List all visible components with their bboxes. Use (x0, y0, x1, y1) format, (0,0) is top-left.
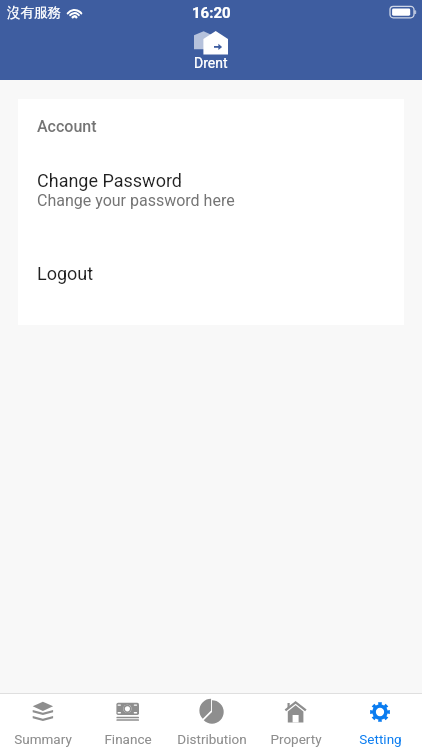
staticText: Property (270, 731, 322, 747)
staticText: Drent (194, 55, 228, 71)
button[interactable]: Distribution (170, 694, 254, 747)
button[interactable]: Property (254, 694, 338, 747)
button[interactable]: Setting (338, 694, 422, 747)
staticText: Change your password here (37, 191, 235, 210)
staticText: Account (37, 117, 97, 136)
staticText: Change Password (37, 170, 182, 191)
staticText: Distribution (177, 731, 247, 747)
staticText: Finance (104, 731, 152, 747)
staticText: 16:20 (192, 4, 231, 22)
button[interactable]: Logout (18, 261, 404, 286)
staticText: Logout (37, 263, 94, 284)
button[interactable]: Summary (0, 694, 85, 747)
button[interactable]: Change Password (18, 168, 404, 212)
staticText: Setting (359, 731, 402, 747)
staticText: 沒有服務 (7, 4, 61, 21)
button[interactable]: Finance (85, 694, 170, 747)
staticText: Summary (14, 731, 72, 747)
